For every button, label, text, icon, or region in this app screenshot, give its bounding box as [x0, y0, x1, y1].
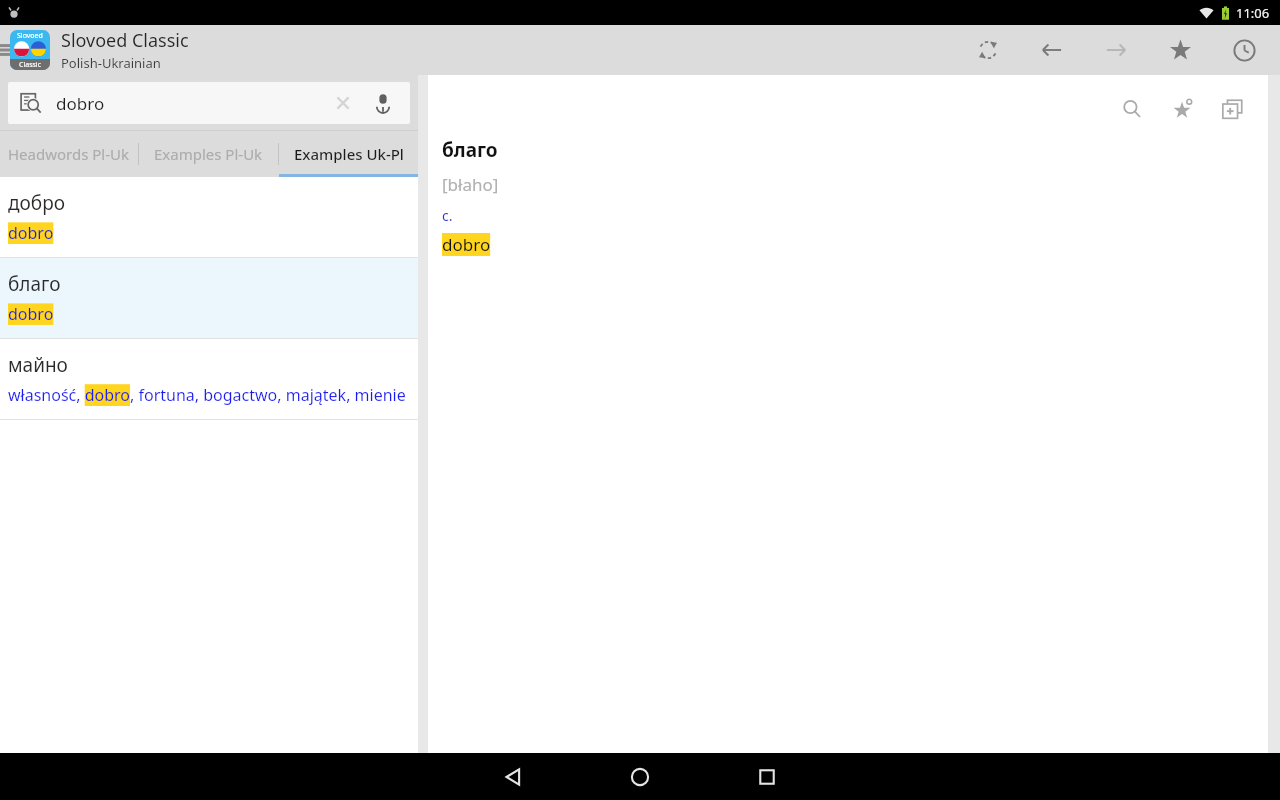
button[interactable]: Voice search: [368, 88, 398, 118]
button[interactable]: Search in article: [1116, 93, 1148, 125]
staticText: dobro: [8, 303, 54, 325]
staticText: Polish-Ukrainian: [61, 54, 161, 72]
staticText: Examples Pl-Uk: [154, 144, 263, 164]
button[interactable]: добро: [0, 177, 418, 257]
button[interactable]: Refresh: [972, 34, 1004, 66]
button[interactable]: Add to favorites: [1166, 93, 1198, 125]
button[interactable]: Examples Pl-Uk: [139, 131, 278, 177]
button[interactable]: Clear: [328, 88, 358, 118]
staticText: dobro: [442, 233, 491, 256]
button[interactable]: Recents: [743, 753, 791, 800]
button[interactable]: Back: [489, 753, 537, 800]
staticText: Slovoed: [17, 31, 43, 41]
button[interactable]: Back: [1036, 34, 1068, 66]
button[interactable]: History: [1228, 34, 1260, 66]
staticText: Headwords Pl-Uk: [8, 144, 130, 164]
staticText: [błaho]: [442, 173, 499, 196]
button[interactable]: Favorites: [1164, 34, 1196, 66]
button[interactable]: Slovoed Classic: [10, 30, 50, 70]
button[interactable]: Menu: [0, 40, 15, 60]
staticText: Classic: [19, 60, 42, 70]
staticText: dobro: [56, 92, 105, 115]
button[interactable]: Home: [616, 753, 664, 800]
button[interactable]: Open in new tab: [1216, 93, 1248, 125]
staticText: c.: [442, 206, 453, 225]
staticText: dobro: [8, 222, 54, 244]
staticText: благо: [442, 137, 498, 163]
staticText: добро: [8, 190, 66, 216]
staticText: Examples Uk-Pl: [294, 144, 404, 164]
button[interactable]: майно: [0, 339, 418, 419]
staticText: własność, dobro, fortuna, bogactwo, mają…: [8, 384, 406, 406]
staticText: Slovoed Classic: [61, 28, 189, 53]
staticText: 11:06: [1236, 4, 1270, 22]
staticText: благо: [8, 271, 61, 297]
button[interactable]: Forward: [1100, 34, 1132, 66]
button[interactable]: благо: [0, 258, 418, 338]
staticText: майно: [8, 352, 68, 378]
button[interactable]: Headwords Pl-Uk: [0, 131, 138, 177]
button[interactable]: Examples Uk-Pl: [279, 131, 418, 177]
button[interactable]: dobro: [8, 82, 410, 124]
